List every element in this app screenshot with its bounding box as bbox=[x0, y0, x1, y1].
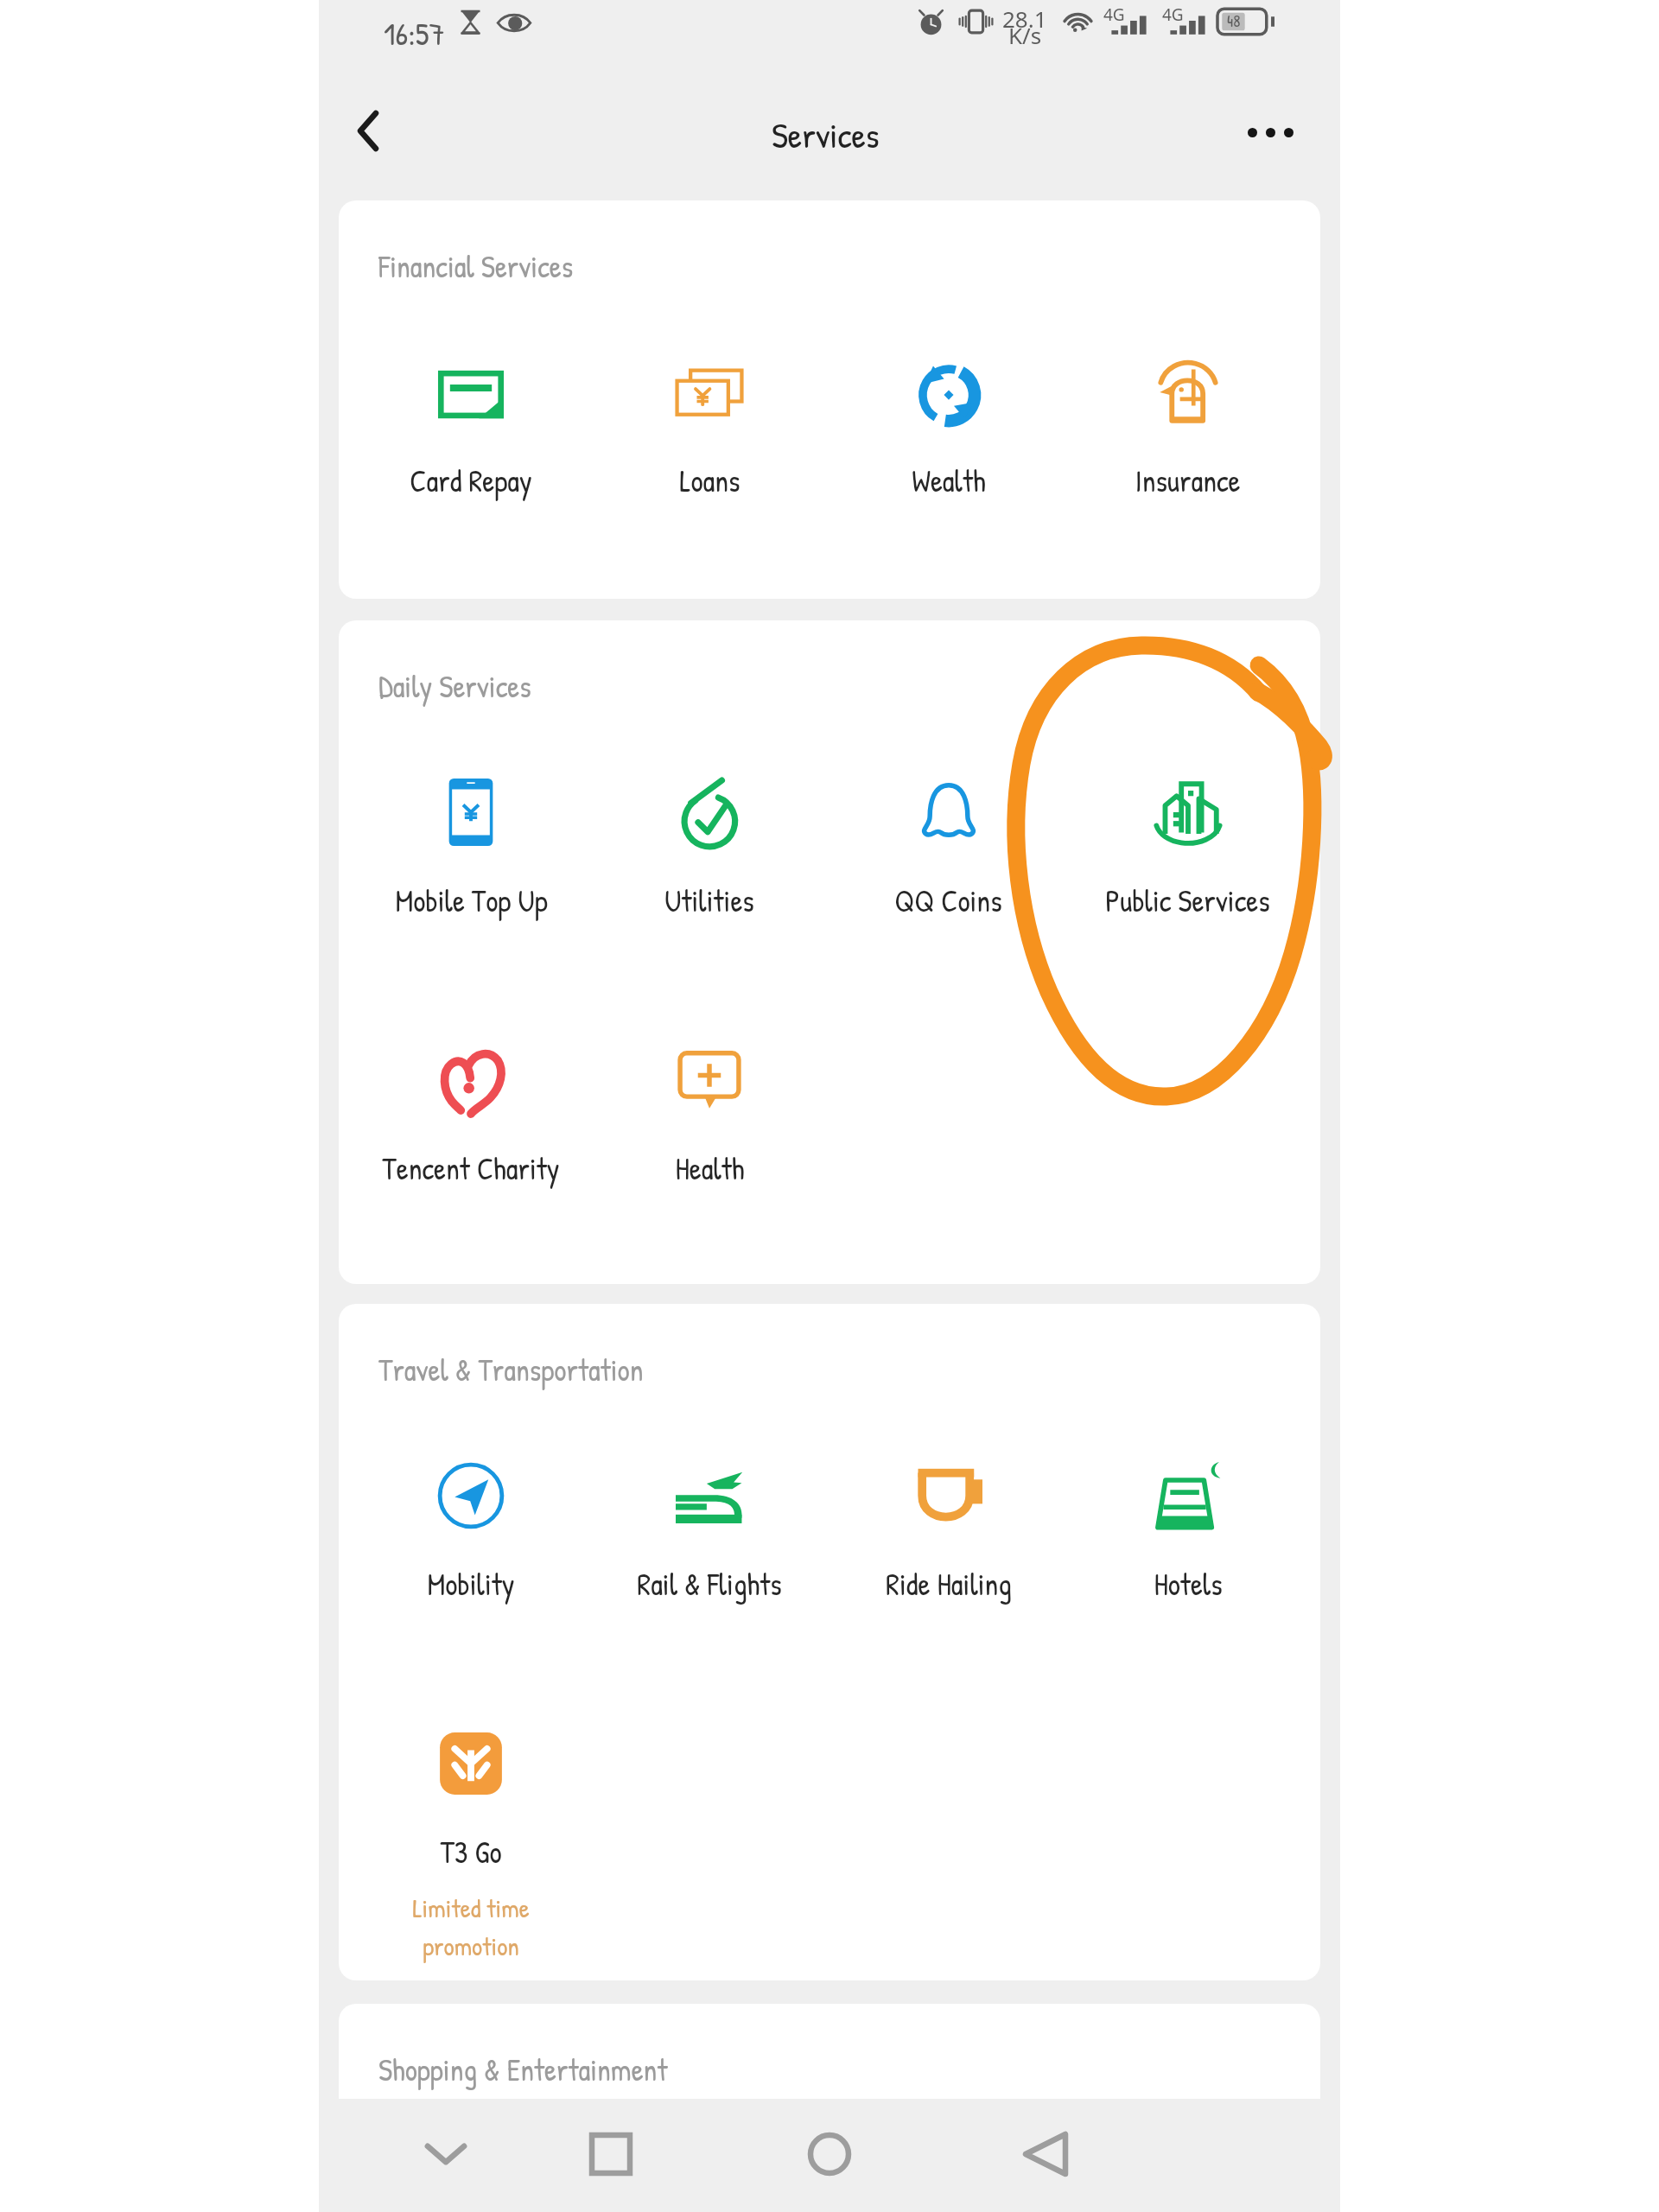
staticText: Health bbox=[675, 1148, 745, 1189]
staticText: 4G bbox=[1162, 3, 1184, 26]
button[interactable]: Home bbox=[791, 2115, 868, 2193]
staticText: Limited time promotion bbox=[412, 1891, 530, 1963]
staticText: Financial Services bbox=[378, 246, 574, 287]
button[interactable]: More options bbox=[1231, 93, 1309, 171]
staticText: Public Services bbox=[1105, 880, 1270, 921]
button[interactable]: Mobile Top Up bbox=[352, 756, 590, 935]
staticText: Wealth bbox=[912, 461, 986, 501]
button[interactable]: Insurance bbox=[1068, 336, 1307, 515]
staticText: Mobile Top Up bbox=[395, 880, 548, 921]
button[interactable]: Back bbox=[329, 92, 407, 169]
staticText: 4G bbox=[1103, 3, 1125, 26]
staticText: Daily Services bbox=[378, 666, 531, 707]
staticText: QQ Coins bbox=[894, 880, 1002, 921]
button[interactable]: Card Repay bbox=[352, 336, 590, 515]
button[interactable]: Rail & Flights bbox=[590, 1440, 829, 1618]
staticText: 48 bbox=[1227, 10, 1241, 32]
staticText: Utilities bbox=[664, 880, 754, 921]
button[interactable]: Recent apps bbox=[572, 2115, 650, 2193]
staticText: T3 Go bbox=[440, 1832, 502, 1872]
staticText: Travel & Transportation bbox=[378, 1350, 644, 1390]
staticText: Mobility bbox=[427, 1564, 515, 1605]
staticText: Shopping & Entertainment bbox=[378, 2050, 668, 2090]
button[interactable]: Back bbox=[1007, 2115, 1084, 2193]
button[interactable]: Ride Hailing bbox=[829, 1440, 1068, 1618]
staticText: Rail & Flights bbox=[637, 1564, 782, 1605]
button[interactable]: Public Services bbox=[1068, 756, 1307, 935]
button[interactable]: Mobility bbox=[352, 1440, 590, 1618]
staticText: 16:57 bbox=[384, 11, 445, 54]
button[interactable]: Tencent Charity bbox=[352, 1024, 590, 1203]
button[interactable]: QQ Coins bbox=[829, 756, 1068, 935]
button[interactable]: T3 Go bbox=[352, 1707, 590, 1886]
button[interactable]: Utilities bbox=[590, 756, 829, 935]
staticText: K/s bbox=[1008, 20, 1042, 50]
button[interactable]: Health bbox=[590, 1024, 829, 1203]
staticText: Ride Hailing bbox=[886, 1564, 1012, 1605]
staticText: Loans bbox=[679, 461, 741, 501]
button[interactable]: Hotels bbox=[1068, 1440, 1307, 1618]
button[interactable]: Loans bbox=[590, 336, 829, 515]
staticText: Insurance bbox=[1135, 461, 1241, 501]
button[interactable]: Wealth bbox=[829, 336, 1068, 515]
staticText: Card Repay bbox=[410, 461, 532, 501]
staticText: 28.1 bbox=[1002, 3, 1047, 34]
staticText: Tencent Charity bbox=[382, 1148, 560, 1189]
staticText: Services bbox=[772, 111, 880, 159]
staticText: Hotels bbox=[1154, 1564, 1223, 1605]
button[interactable]: Hide keyboard bbox=[407, 2115, 485, 2193]
